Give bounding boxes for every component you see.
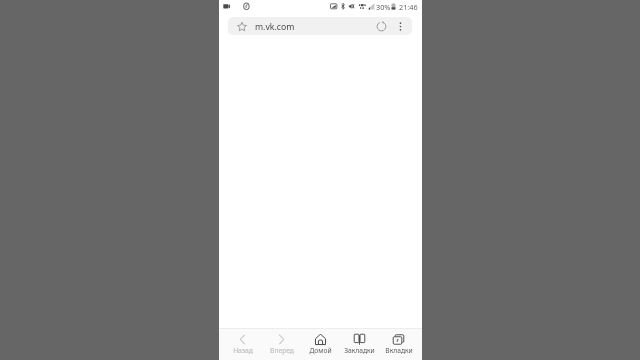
staticText: 21:46 [399,2,418,12]
button[interactable]: Домой [301,329,340,360]
button[interactable]: More options [393,17,407,35]
staticText: 30% [376,2,391,12]
staticText: Вкладки [385,346,413,355]
button[interactable]: Закладки [340,329,379,360]
staticText: Домой [309,346,332,355]
staticText: Назад [233,346,253,355]
staticText: Закладки [344,346,375,355]
button[interactable]: Вперед [262,329,301,360]
staticText: Вперед [270,346,294,355]
staticText: m.vk.com [255,21,295,33]
button[interactable]: Bookmark [228,17,412,35]
button[interactable]: Bookmark [235,18,248,35]
button[interactable]: Reload [373,17,389,35]
button[interactable]: Вкладки [379,329,418,360]
button[interactable]: Назад [223,329,262,360]
